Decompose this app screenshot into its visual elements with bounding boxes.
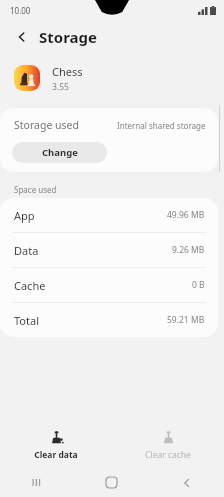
staticText: Space used <box>14 184 57 195</box>
staticText: 3.55 <box>52 81 69 93</box>
staticText: Clear data <box>34 449 78 461</box>
staticText: Chess <box>52 64 83 79</box>
staticText: Change <box>42 146 78 159</box>
button[interactable]: App <box>0 198 218 233</box>
staticText: Data <box>14 243 39 258</box>
button[interactable]: Data <box>0 233 218 268</box>
staticText: Total <box>14 313 39 328</box>
button[interactable]: Recent apps <box>0 468 74 497</box>
staticText: Cache <box>14 278 46 293</box>
button[interactable]: Home <box>74 468 149 497</box>
button[interactable]: Clear cache <box>112 423 224 468</box>
staticText: Clear cache <box>145 449 191 461</box>
staticText: Storage used <box>14 118 79 132</box>
staticText: 59.21 MB <box>167 314 205 326</box>
button[interactable]: Back <box>11 26 33 48</box>
button[interactable]: Cache <box>0 268 218 303</box>
button[interactable]: Total <box>0 303 218 337</box>
staticText: 10.00 <box>10 5 31 16</box>
staticText: Internal shared storage <box>117 120 206 131</box>
button[interactable]: Clear data <box>0 423 112 468</box>
staticText: 49.96 MB <box>167 209 205 221</box>
staticText: 9.26 MB <box>172 244 205 256</box>
button[interactable]: Change <box>12 142 107 163</box>
staticText: 0 B <box>192 279 205 291</box>
staticText: Storage <box>39 27 97 47</box>
button[interactable]: Back <box>149 468 224 497</box>
staticText: App <box>14 208 35 223</box>
